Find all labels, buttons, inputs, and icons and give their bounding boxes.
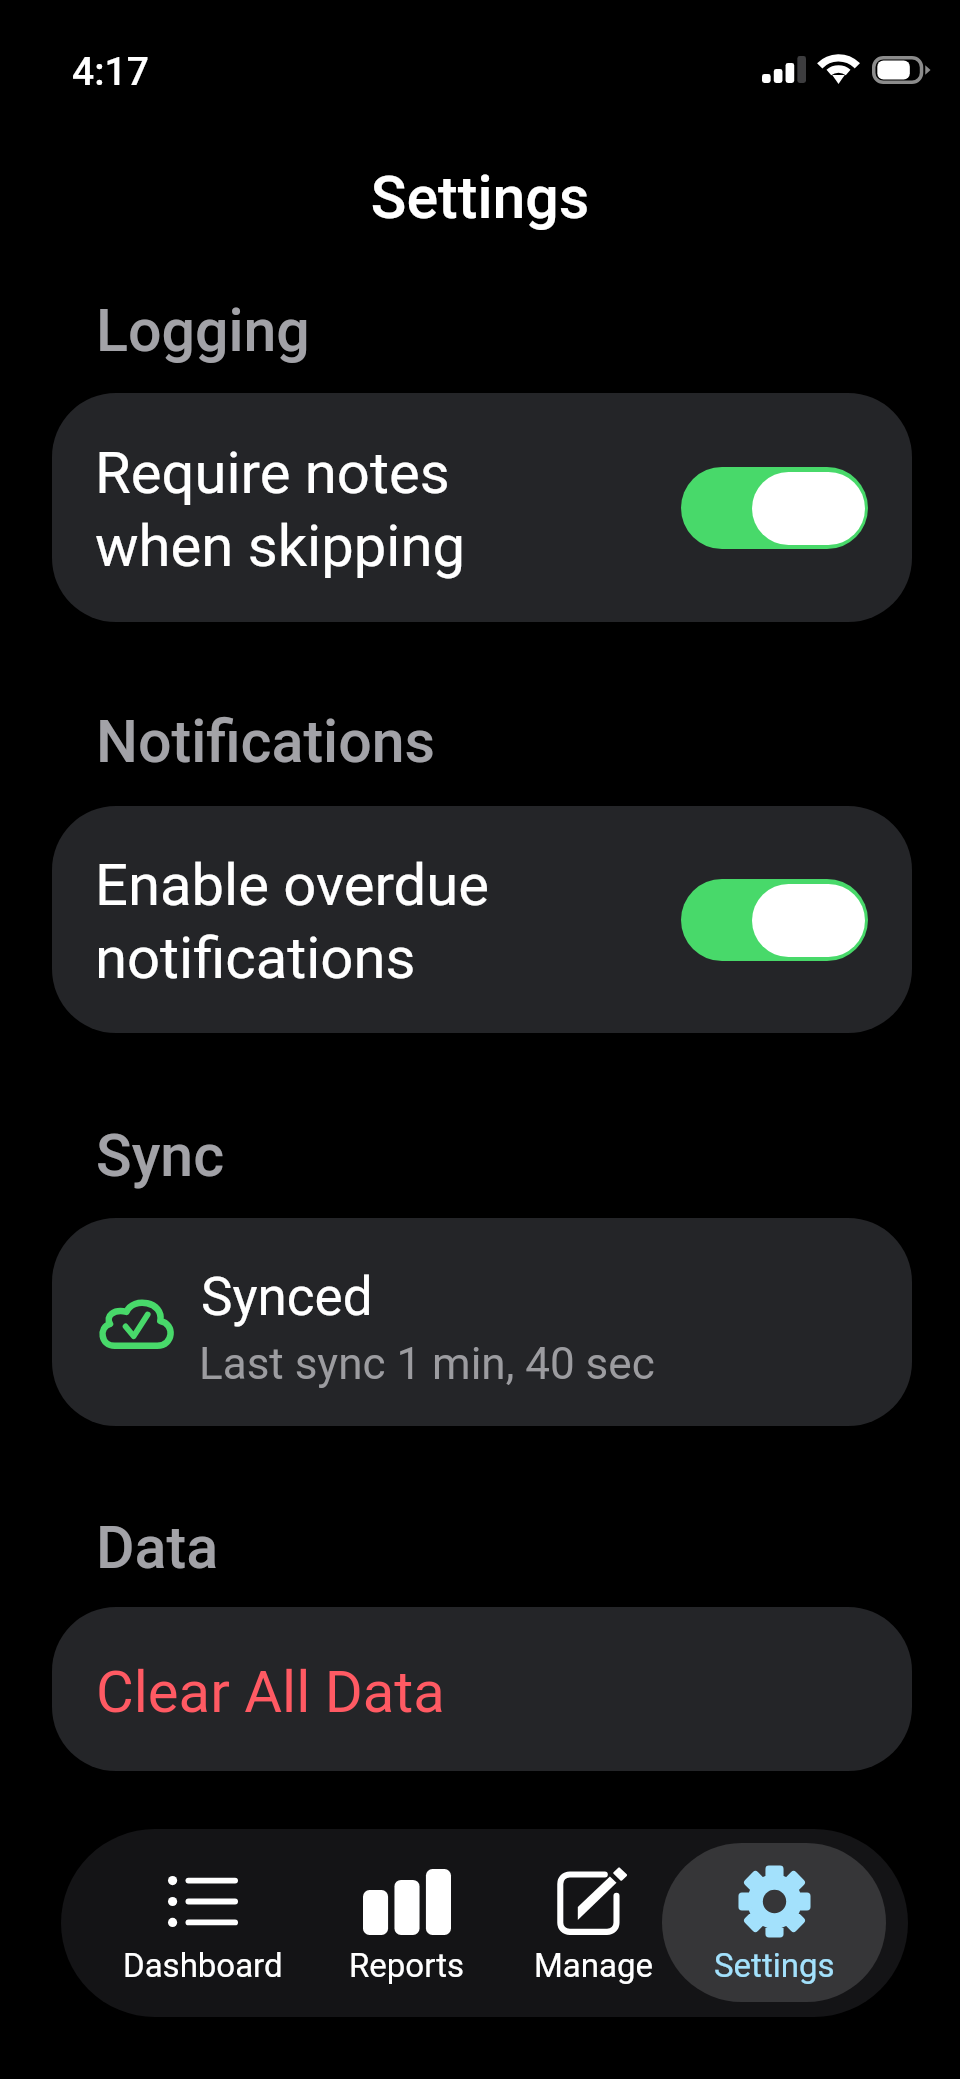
staticText: 4:17 [72,49,149,95]
button[interactable]: Enable overdue notifications [52,806,912,1033]
other: Cellular signal [762,56,806,83]
staticText: Last sync 1 min, 40 sec [199,1338,655,1390]
staticText: Notifications [96,707,436,776]
staticText: Dashboard [123,1946,283,1985]
staticText: Manage [534,1946,653,1985]
other: Wi-Fi [819,54,858,84]
staticText: Settings [0,163,960,232]
button[interactable]: Require notes when skipping [52,393,912,622]
button[interactable]: Synced [52,1218,912,1426]
staticText: Settings [714,1946,835,1985]
staticText: Sync [96,1121,225,1190]
button[interactable]: Reports [295,1843,519,2002]
button[interactable]: Settings [662,1843,886,2002]
staticText: Enable overdue notifications [95,851,490,992]
button[interactable]: Dashboard [91,1843,315,2002]
button[interactable]: Clear All Data [52,1607,912,1771]
button[interactable]: Toggle [681,467,868,549]
other: Battery [872,56,930,84]
staticText: Synced [201,1266,373,1328]
staticText: Logging [96,296,310,365]
staticText: Require notes when skipping [95,439,465,580]
staticText: Data [96,1513,219,1582]
button[interactable]: Toggle [681,879,868,961]
other: Synced [100,1297,174,1349]
staticText: Reports [349,1946,465,1985]
staticText: Clear All Data [96,1658,445,1726]
button[interactable]: Manage [481,1843,705,2002]
